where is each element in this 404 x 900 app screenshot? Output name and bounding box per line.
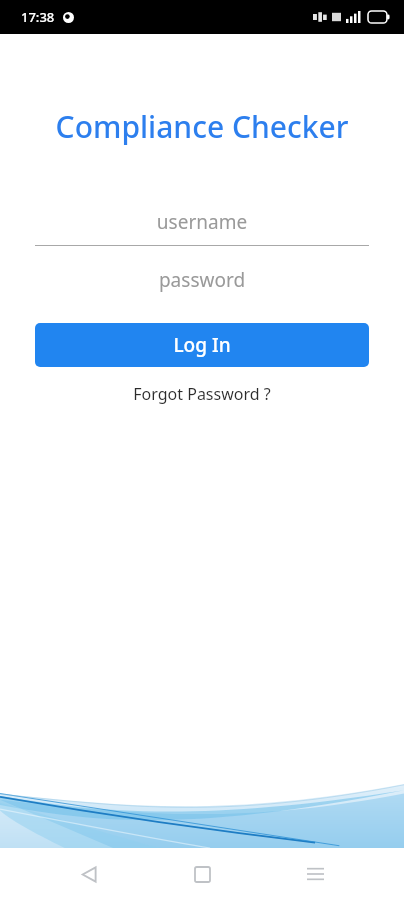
button[interactable]: Back: [65, 850, 113, 898]
staticText: password: [35, 267, 369, 293]
button[interactable]: username: [35, 209, 369, 246]
button[interactable]: Log In: [35, 323, 369, 367]
button[interactable]: Home: [178, 850, 226, 898]
button[interactable]: Recent apps: [291, 850, 339, 898]
staticText: Log In: [35, 332, 369, 358]
staticText: username: [35, 209, 369, 235]
staticText: 17:38: [21, 8, 55, 26]
button[interactable]: password: [35, 267, 369, 293]
button[interactable]: Forgot Password ?: [0, 383, 404, 405]
staticText: Forgot Password ?: [0, 383, 404, 405]
staticText: Compliance Checker: [0, 106, 404, 147]
